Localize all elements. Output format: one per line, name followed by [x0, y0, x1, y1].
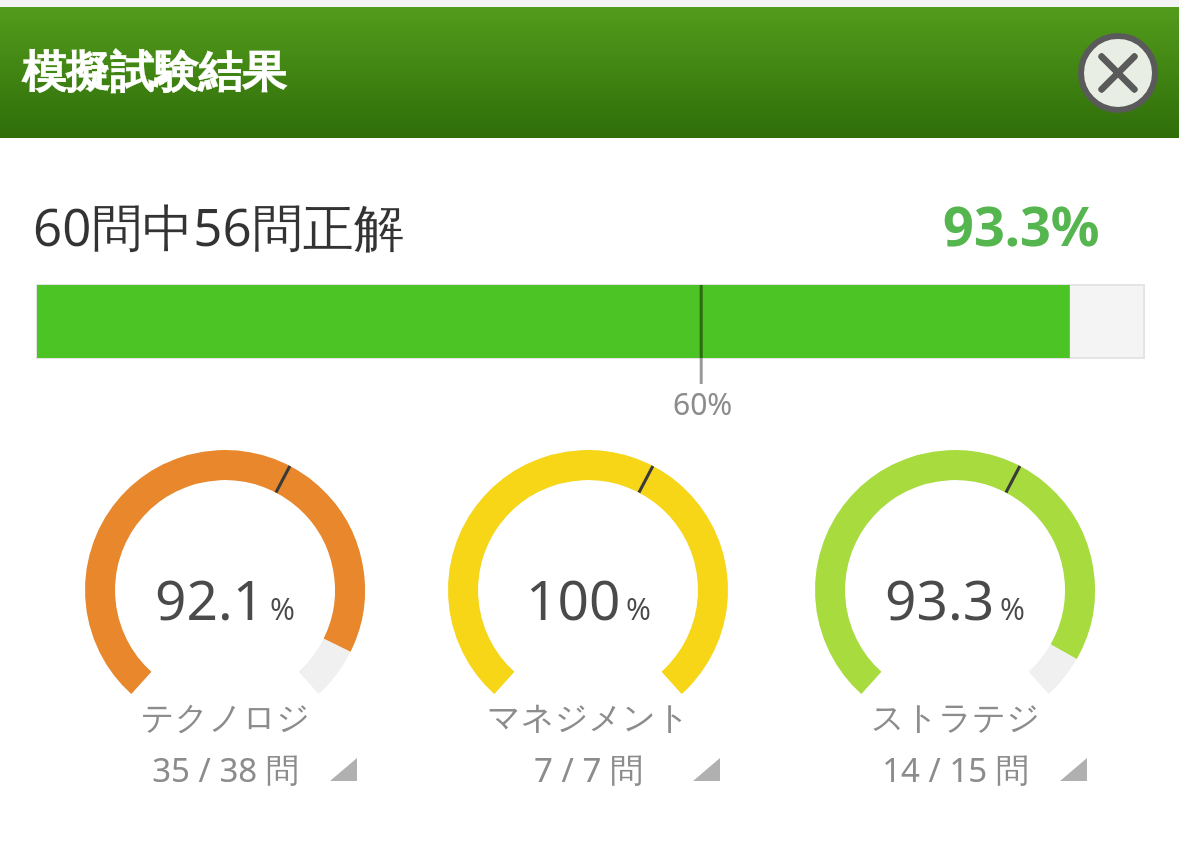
staticText: 100	[526, 561, 621, 636]
staticText: 60%	[673, 383, 733, 424]
staticText: %	[270, 588, 295, 629]
staticText: 模擬試験結果	[22, 45, 286, 100]
staticText: 60問中56問正解	[33, 191, 405, 261]
button[interactable]: テクノロジ 92.1 パーセント 35 / 38 問	[65, 445, 385, 765]
staticText: %	[1000, 588, 1025, 629]
button[interactable]: マネジメント 100 パーセント 7 / 7 問	[428, 445, 748, 765]
staticText: 92.1	[155, 561, 265, 636]
staticText: ストラテジ	[871, 697, 1040, 739]
button[interactable]: ストラテジ 93.3 パーセント 14 / 15 問	[795, 445, 1115, 765]
staticText: 14 / 15 問	[882, 747, 1029, 792]
button[interactable]: 閉じる	[1077, 32, 1159, 114]
staticText: 7 / 7 問	[534, 747, 643, 792]
staticText: 35 / 38 問	[152, 747, 299, 792]
staticText: 93.3	[885, 561, 995, 636]
staticText: テクノロジ	[141, 697, 310, 739]
staticText: 93.3%	[943, 188, 1100, 262]
staticText: %	[626, 588, 651, 629]
staticText: マネジメント	[487, 697, 690, 739]
